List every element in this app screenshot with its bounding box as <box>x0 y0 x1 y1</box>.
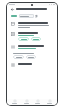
button[interactable] <box>31 37 41 41</box>
button[interactable] <box>7 30 57 43</box>
button[interactable]: Back <box>10 7 14 11</box>
button[interactable]: Tab 3 <box>33 99 42 105</box>
button[interactable] <box>18 37 29 41</box>
button[interactable] <box>7 43 57 51</box>
button[interactable] <box>7 61 57 69</box>
button[interactable]: Tab 1 <box>10 99 19 105</box>
button[interactable] <box>7 20 57 30</box>
button[interactable]: Tab 2 <box>22 99 31 105</box>
button[interactable] <box>13 55 24 59</box>
button[interactable]: Tab 4 <box>45 99 54 105</box>
button[interactable] <box>26 55 36 59</box>
button[interactable] <box>7 12 57 20</box>
button[interactable] <box>7 51 57 61</box>
